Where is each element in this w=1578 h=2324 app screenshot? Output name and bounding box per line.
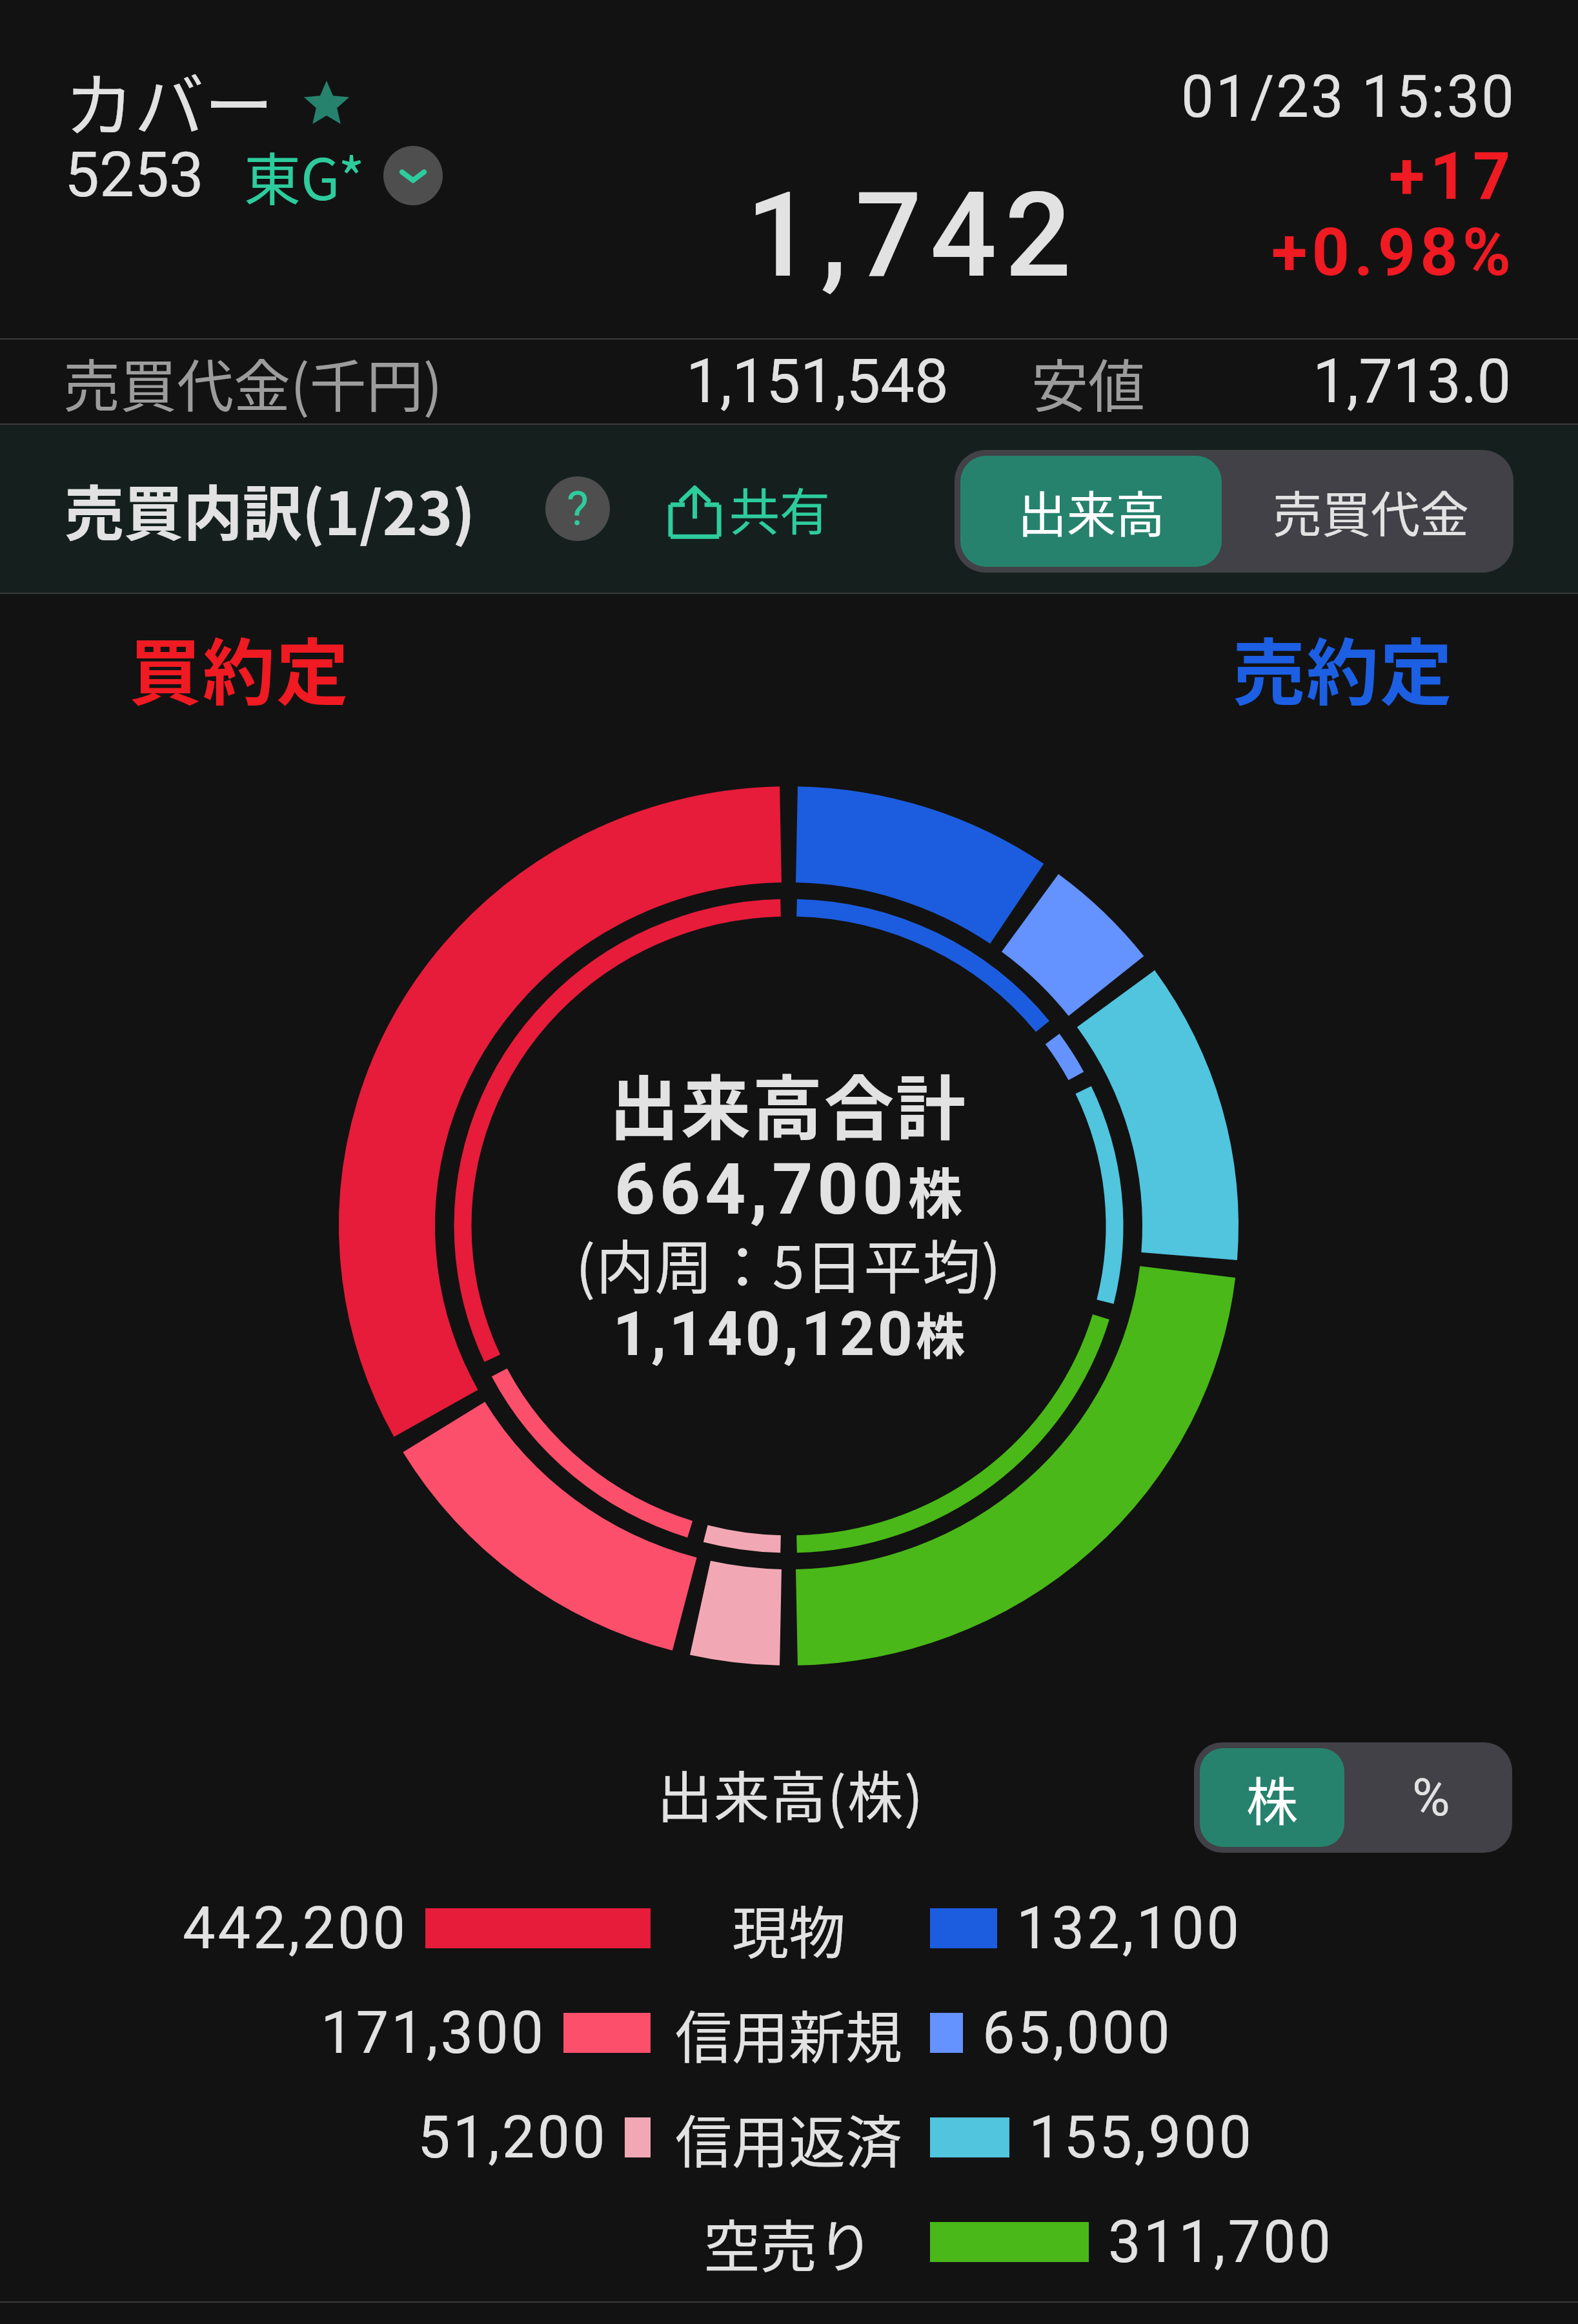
staticText: 現物 <box>732 1888 846 1970</box>
staticText: 売買代金(千円) <box>63 341 443 423</box>
staticText: 出来高 <box>1018 476 1165 547</box>
staticText: 信用返済 <box>675 2097 903 2179</box>
staticText: 311,700 <box>1108 2208 1334 2276</box>
staticText: +0.98% <box>1271 214 1516 291</box>
button[interactable]: 売買代金 <box>1228 450 1513 573</box>
staticText: % <box>1412 1768 1450 1828</box>
button[interactable]: 出来高 <box>960 456 1222 567</box>
staticText: 買約定 <box>129 615 350 720</box>
staticText: 株 <box>1246 1760 1298 1835</box>
button[interactable]: 空売り <box>0 2190 1578 2294</box>
staticText: 1,140,120 <box>613 1299 916 1370</box>
staticText: 1,742 <box>746 167 1080 304</box>
staticText: +17 <box>1389 138 1516 215</box>
button[interactable]: カバー <box>65 50 350 151</box>
staticText: 空売り <box>703 2201 875 2283</box>
staticText: 1,713.0 <box>1313 346 1512 417</box>
staticText: 664,700 <box>614 1148 908 1231</box>
button[interactable]: 171,300 <box>0 1981 1578 2085</box>
button[interactable]: 株 <box>1200 1748 1344 1847</box>
staticText: 171,300 <box>321 1999 547 2067</box>
staticText: 51,200 <box>418 2104 608 2172</box>
staticText: 売買内訳(1/23) <box>65 466 475 552</box>
button[interactable]: % <box>1350 1742 1512 1853</box>
button[interactable]: Expand market <box>383 146 443 205</box>
staticText: 01/23 15:30 <box>1181 63 1516 131</box>
staticText: 安値 <box>1031 341 1146 423</box>
staticText: 65,000 <box>982 1999 1173 2067</box>
staticText: 株 <box>916 1298 965 1369</box>
staticText: 1,151,548 <box>686 346 949 417</box>
staticText: 出来高(株) <box>657 1753 925 1834</box>
staticText: 売買代金 <box>1273 476 1469 547</box>
staticText: 共有 <box>729 473 831 545</box>
button[interactable]: Help <box>545 476 610 541</box>
staticText: 442,200 <box>183 1895 409 1962</box>
staticText: (内周：5日平均) <box>576 1221 1002 1305</box>
staticText: 東G* <box>244 134 365 216</box>
button[interactable]: 51,200 <box>0 2085 1578 2190</box>
staticText: 155,900 <box>1029 2104 1255 2172</box>
staticText: 出来高合計 <box>609 1053 968 1154</box>
staticText: 売約定 <box>1233 615 1453 720</box>
staticText: ? <box>567 482 589 536</box>
staticText: 信用新規 <box>675 1992 903 2074</box>
staticText: 5253 <box>65 139 204 212</box>
staticText: 132,100 <box>1017 1895 1242 1962</box>
staticText: カバー <box>65 50 274 151</box>
button[interactable]: Share <box>667 473 831 545</box>
button[interactable]: 442,200 <box>0 1876 1578 1981</box>
staticText: 株 <box>908 1151 963 1230</box>
